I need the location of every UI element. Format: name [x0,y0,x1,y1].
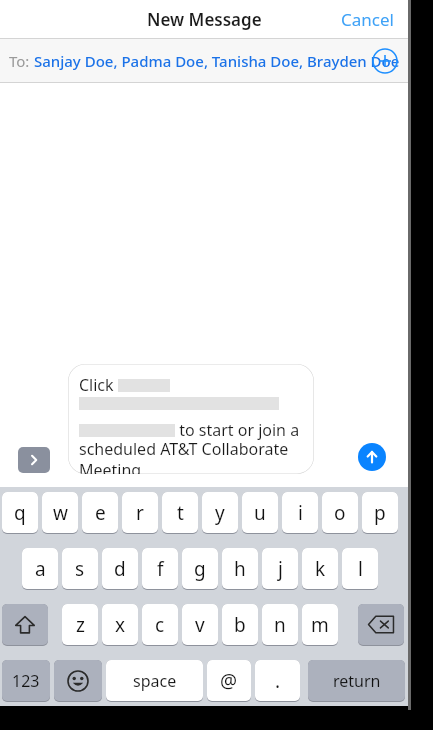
staticText: Cancel [341,8,394,31]
button[interactable]: v [182,604,218,645]
staticText: Meeting [79,459,142,474]
staticText: i [298,500,303,526]
staticText: return [333,670,381,692]
staticText: h [234,556,246,582]
button[interactable]: m [302,604,338,645]
button[interactable]: Expand apps [18,447,50,473]
button[interactable]: New Message [147,8,262,31]
staticText: s [75,556,85,582]
button[interactable]: Click [68,364,314,474]
button[interactable]: q [2,492,38,533]
button[interactable]: return [308,660,405,701]
staticText: space [133,670,177,692]
staticText: z [76,612,85,638]
button[interactable] [2,604,48,645]
staticText: o [334,500,346,526]
staticText: n [274,612,286,638]
staticText: k [315,556,326,582]
button[interactable]: t [162,492,198,533]
staticText: . [275,668,281,694]
button[interactable]: z [62,604,98,645]
staticText: j [278,556,283,582]
staticText: q [14,500,26,526]
button[interactable]: u [242,492,278,533]
button[interactable]: Send [358,443,386,471]
button[interactable]: o [322,492,358,533]
staticText: a [35,556,46,582]
staticText: to start or join a [175,419,300,441]
button[interactable]: s [62,548,98,589]
button[interactable]: k [302,548,338,589]
staticText: e [95,500,106,526]
staticText: y [215,500,225,526]
staticText: g [194,556,206,582]
button[interactable]: Cancel [337,4,398,35]
staticText: Sanjay Doe, Padma Doe, Tanisha Doe, Bray… [34,51,400,71]
button[interactable]: To: [0,39,408,83]
button[interactable]: space [106,660,203,701]
staticText: u [254,500,266,526]
staticText: d [114,556,126,582]
staticText: w [53,500,68,526]
button[interactable]: n [262,604,298,645]
button[interactable]: g [182,548,218,589]
staticText: t [177,500,184,526]
button[interactable]: b [222,604,258,645]
button[interactable]: e [82,492,118,533]
staticText: f [157,556,164,582]
staticText: @ [220,668,238,694]
button[interactable]: p [362,492,398,533]
button[interactable]: a [22,548,58,589]
button[interactable]: Add contact [372,48,398,74]
button[interactable]: 123 [2,660,50,701]
button[interactable]: f [142,548,178,589]
staticText: r [136,500,144,526]
button[interactable]: c [142,604,178,645]
staticText: To: [9,51,34,71]
button[interactable]: x [102,604,138,645]
button[interactable]: @ [207,660,251,701]
button[interactable] [358,604,404,645]
staticText: scheduled AT&T Collaborate [79,438,289,460]
staticText: b [234,612,246,638]
button[interactable]: . [255,660,300,701]
button[interactable]: l [342,548,378,589]
button[interactable]: y [202,492,238,533]
button[interactable]: i [282,492,318,533]
staticText: c [155,612,165,638]
button[interactable]: r [122,492,158,533]
staticText: p [374,500,386,526]
staticText: l [358,556,363,582]
button[interactable]: w [42,492,78,533]
staticText: m [311,612,329,638]
button[interactable]: h [222,548,258,589]
staticText: Click [79,374,118,396]
staticText: x [115,612,126,638]
button[interactable]: j [262,548,298,589]
button[interactable] [54,660,102,701]
staticText: New Message [147,8,262,31]
button[interactable]: d [102,548,138,589]
staticText: v [195,612,205,638]
staticText: 123 [12,670,40,692]
